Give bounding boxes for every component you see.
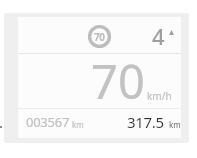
- button[interactable]: 003567: [26, 113, 84, 131]
- other: Shift up: [169, 30, 174, 35]
- staticText: 003567: [26, 113, 70, 131]
- staticText: km: [72, 119, 84, 130]
- staticText: 70: [91, 49, 145, 113]
- button[interactable]: 317.5: [127, 112, 181, 132]
- staticText: km/h: [147, 89, 172, 103]
- staticText: 4: [152, 21, 165, 51]
- staticText: 70: [94, 30, 105, 44]
- staticText: km: [169, 119, 181, 130]
- button[interactable]: Speed limit 70: [88, 25, 111, 48]
- staticText: 317.5: [127, 112, 164, 132]
- button[interactable]: 4: [144, 21, 157, 51]
